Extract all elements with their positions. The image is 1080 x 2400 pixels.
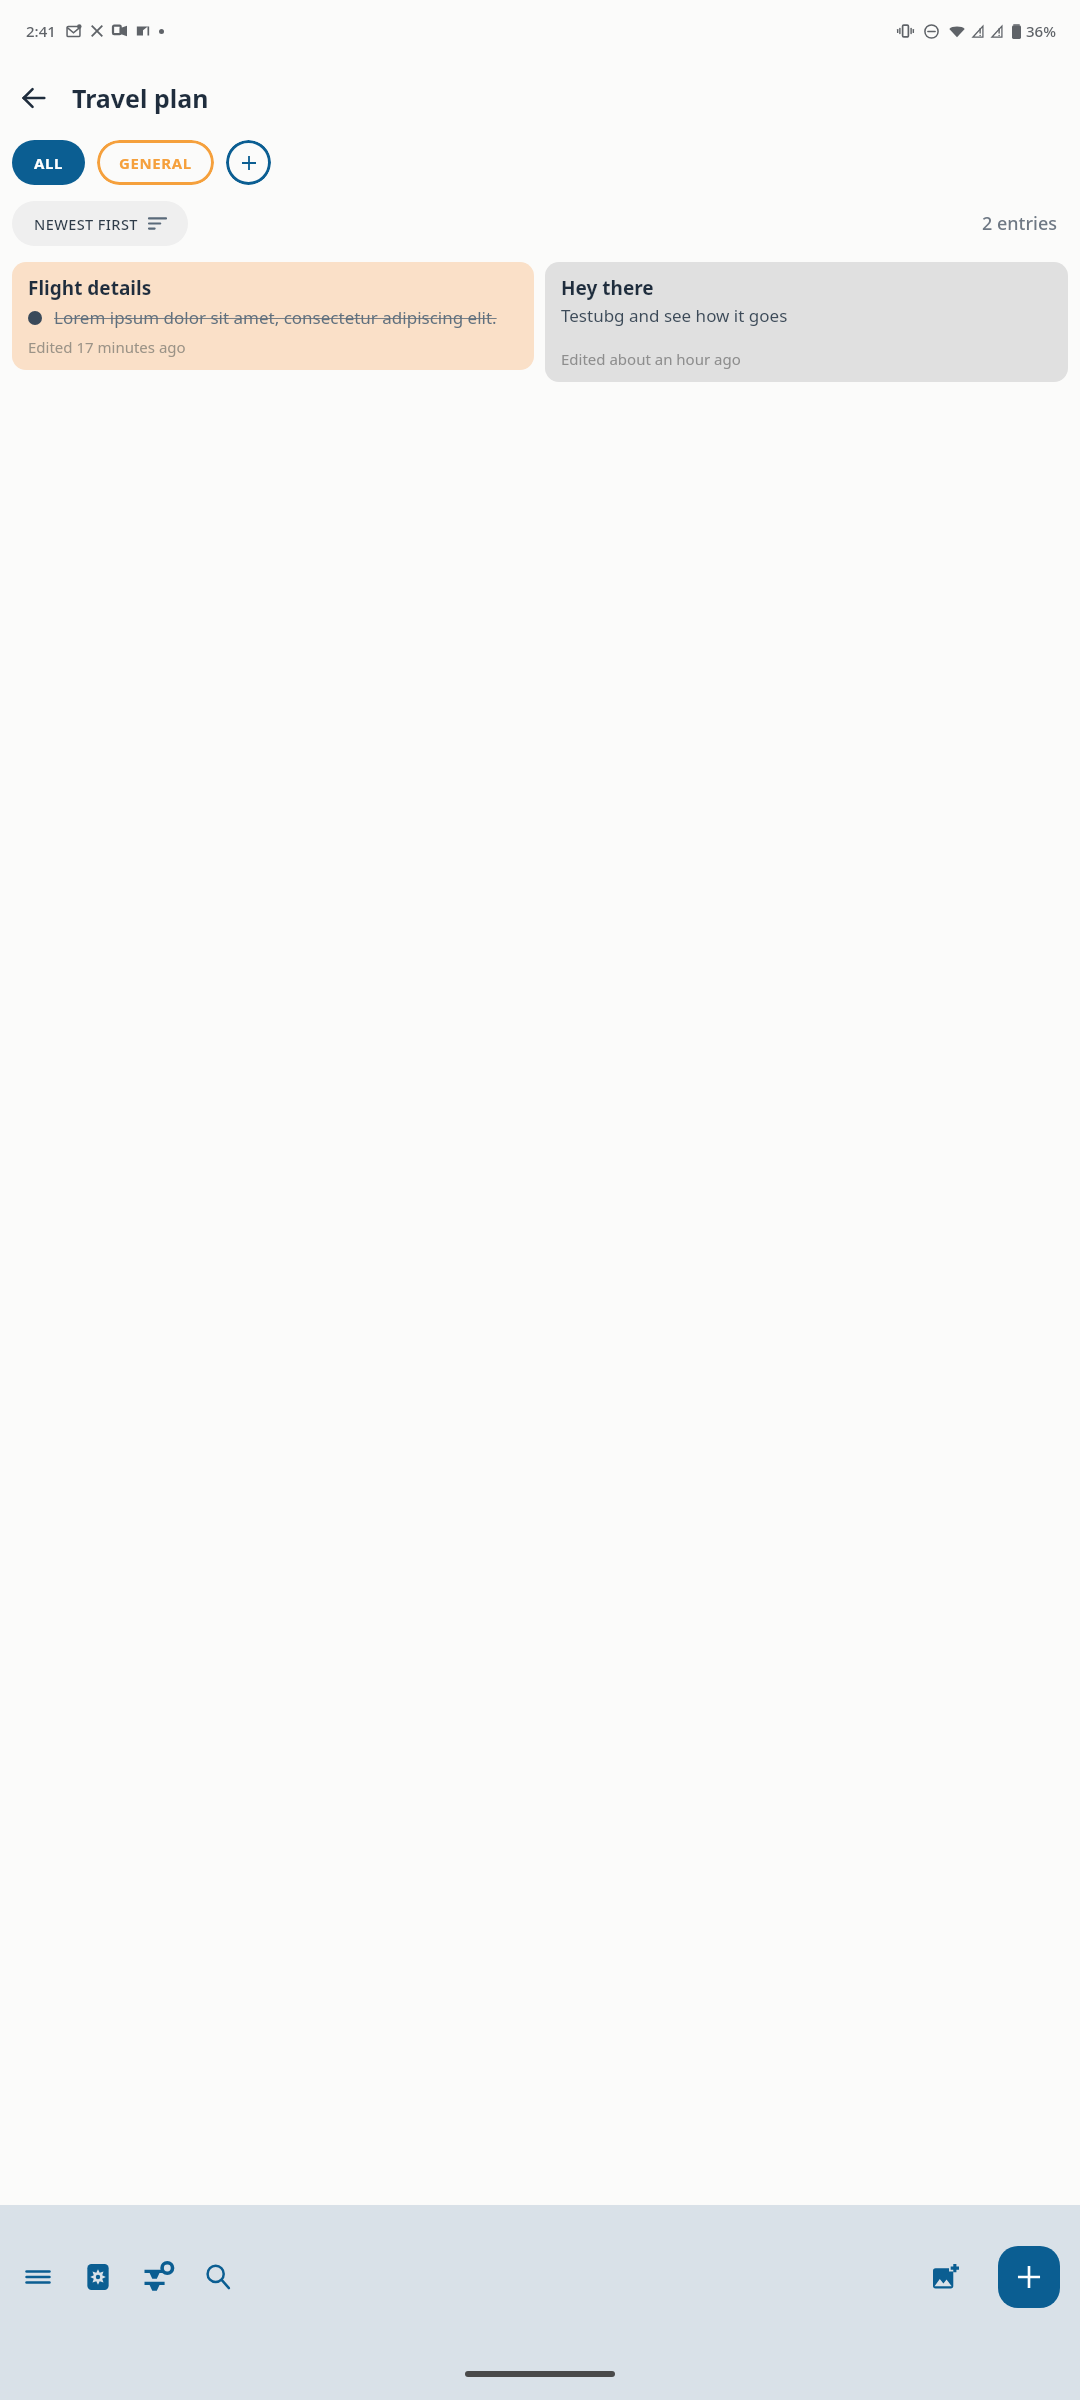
button[interactable]: NEWEST FIRST (12, 201, 188, 246)
button[interactable]: Menu (8, 2247, 68, 2307)
staticText: 2 entries (982, 211, 1058, 236)
staticText: Edited 17 minutes ago (28, 337, 186, 357)
staticText: Testubg and see how it goes (561, 304, 788, 327)
staticText: GENERAL (119, 153, 192, 173)
staticText: Flight details (28, 275, 152, 301)
button[interactable]: Search (188, 2247, 248, 2307)
staticText: Edited about an hour ago (561, 349, 741, 369)
staticText: Lorem ipsum dolor sit amet, consectetur … (54, 306, 497, 329)
button[interactable]: Settings (68, 2247, 128, 2307)
staticText: ALL (34, 153, 63, 173)
button[interactable]: Inbox (128, 2247, 188, 2307)
button[interactable]: Hey there (545, 262, 1068, 382)
button[interactable]: Back (8, 72, 60, 124)
staticText: 2:41 (26, 21, 56, 41)
staticText: Travel plan (72, 81, 209, 115)
staticText: NEWEST FIRST (34, 214, 138, 234)
button[interactable]: Add image (916, 2247, 976, 2307)
button[interactable]: Add entry (998, 2246, 1060, 2308)
button[interactable]: GENERAL (97, 140, 214, 185)
button[interactable]: ALL (12, 140, 85, 185)
button[interactable]: Flight details (12, 262, 534, 370)
staticText: Hey there (561, 275, 654, 301)
button[interactable]: Add category (226, 140, 271, 185)
staticText: 36% (1026, 21, 1056, 41)
